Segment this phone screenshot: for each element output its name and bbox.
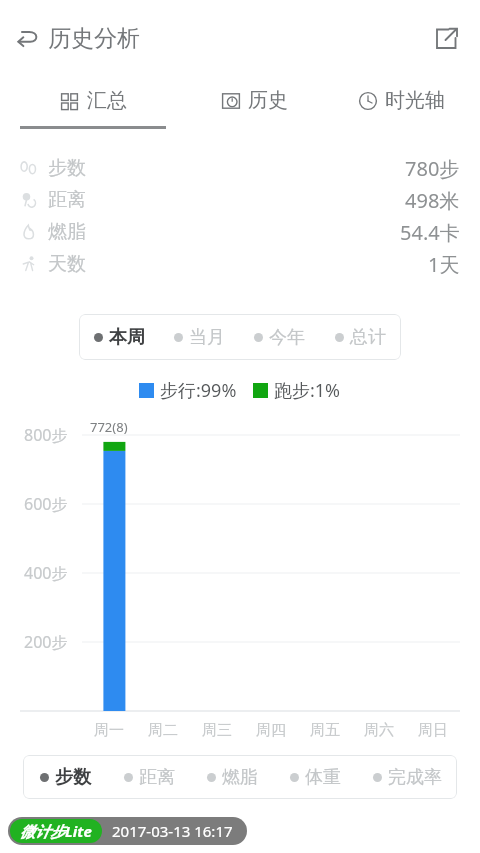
staticText: 周五 — [310, 721, 340, 740]
staticText: 200步 — [24, 631, 68, 653]
staticText: 微计步Lite — [20, 821, 92, 841]
staticText: 周日 — [418, 721, 448, 740]
button[interactable]: 总计 — [320, 314, 401, 360]
button[interactable]: 燃脂 — [0, 216, 480, 248]
staticText: 周一 — [94, 721, 124, 740]
staticText: 当月 — [189, 326, 225, 349]
button[interactable]: 历史 — [186, 76, 322, 124]
staticText: 本周 — [109, 326, 145, 349]
button[interactable]: 天数 — [0, 248, 480, 280]
staticText: 498米 — [405, 187, 460, 214]
button[interactable]: 步数 — [0, 152, 480, 184]
button[interactable]: Back — [0, 16, 152, 61]
staticText: 1天 — [428, 251, 460, 278]
button[interactable]: 今年 — [239, 314, 320, 360]
staticText: 燃脂 — [222, 766, 258, 789]
staticText: 780步 — [405, 155, 460, 182]
staticText: 距离 — [48, 188, 86, 212]
staticText: 2017-03-13 16:17 — [112, 821, 233, 841]
staticText: 步数 — [55, 766, 91, 789]
staticText: 800步 — [24, 424, 68, 446]
staticText: 54.4卡 — [400, 219, 460, 246]
button[interactable]: 完成率 — [357, 755, 457, 799]
staticText: 时光轴 — [385, 88, 445, 113]
staticText: 燃脂 — [48, 220, 86, 244]
staticText: 历史 — [248, 88, 288, 113]
staticText: 周四 — [256, 721, 286, 740]
button[interactable]: 步数 — [23, 755, 107, 799]
staticText: 400步 — [24, 562, 68, 584]
staticText: 完成率 — [388, 766, 442, 789]
button[interactable]: 本周 — [79, 314, 159, 360]
other: Back — [16, 27, 39, 50]
staticText: 600步 — [24, 493, 68, 515]
staticText: 距离 — [139, 766, 175, 789]
button[interactable]: 距离 — [0, 184, 480, 216]
button[interactable]: 时光轴 — [322, 76, 480, 124]
staticText: 步数 — [48, 156, 86, 180]
button[interactable]: 体重 — [274, 755, 357, 799]
button[interactable]: 距离 — [107, 755, 191, 799]
staticText: 周六 — [364, 721, 394, 740]
staticText: 体重 — [305, 766, 341, 789]
staticText: 步行:99% — [160, 378, 237, 403]
staticText: 跑步:1% — [274, 378, 341, 403]
staticText: 周三 — [202, 721, 232, 740]
staticText: 天数 — [48, 252, 86, 276]
button[interactable]: 当月 — [159, 314, 239, 360]
button[interactable]: Share — [426, 18, 466, 58]
staticText: 总计 — [350, 326, 386, 349]
button[interactable]: 汇总 — [0, 76, 186, 124]
staticText: 汇总 — [87, 88, 127, 113]
staticText: 周二 — [148, 721, 178, 740]
button[interactable]: 燃脂 — [191, 755, 274, 799]
staticText: 772(8) — [90, 418, 128, 436]
staticText: 今年 — [269, 326, 305, 349]
staticText: 历史分析 — [48, 24, 140, 53]
